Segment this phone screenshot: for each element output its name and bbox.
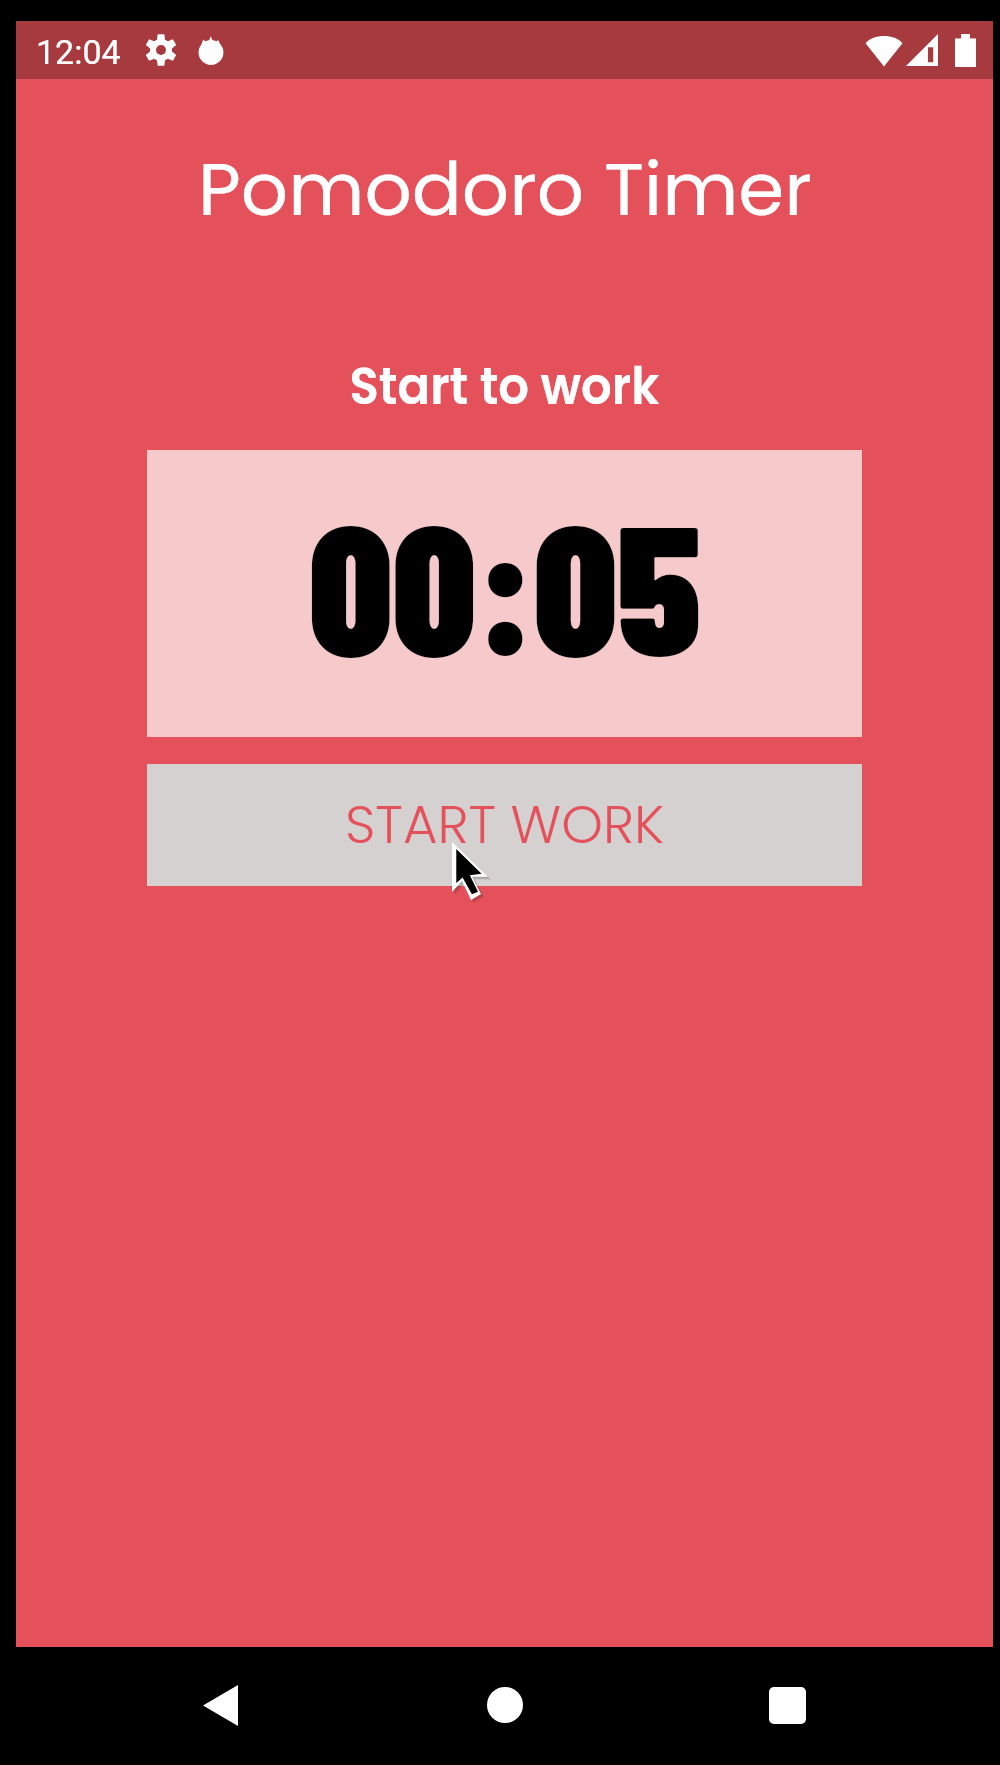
button[interactable]: Recent apps [727, 1665, 847, 1745]
staticText: 00:05 [309, 475, 701, 692]
staticText: Start to work [350, 349, 659, 422]
button[interactable]: START WORK [147, 764, 862, 886]
staticText: Pomodoro Timer [198, 137, 812, 241]
button[interactable]: Home [445, 1665, 565, 1745]
button[interactable]: Back [160, 1665, 280, 1745]
staticText: 12:04 [36, 32, 121, 72]
staticText: START WORK [345, 787, 665, 861]
